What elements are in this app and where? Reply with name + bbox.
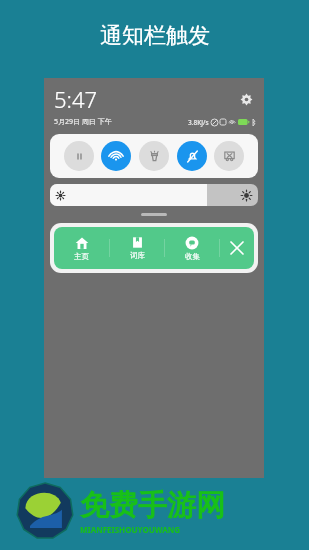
staticText: 免费手游网 [80, 487, 225, 524]
staticText: 5:47 [54, 84, 98, 114]
button[interactable]: Screenshot [214, 141, 244, 171]
staticText: 词库 [130, 251, 145, 260]
button[interactable]: 主页 [54, 234, 109, 263]
button[interactable]: Flashlight [139, 141, 169, 171]
staticText: MIANFEISHOUYOUWANG [80, 524, 181, 535]
button[interactable]: Brightness [50, 184, 258, 206]
staticText: 主页 [74, 252, 89, 261]
button[interactable]: Settings [237, 90, 255, 108]
button[interactable]: 词库 [110, 234, 164, 262]
staticText: 通知栏触发 [100, 22, 210, 50]
staticText: 收集 [185, 252, 200, 261]
staticText: 3.8KJ/s [188, 118, 209, 127]
button[interactable]: Pause [64, 141, 94, 171]
button[interactable]: Silent [177, 141, 207, 171]
button[interactable]: Wi-Fi [101, 141, 131, 171]
button[interactable]: Close [220, 233, 254, 263]
staticText: 5月29日 周日 下午 [54, 117, 112, 127]
button[interactable]: 收集 [165, 234, 219, 263]
